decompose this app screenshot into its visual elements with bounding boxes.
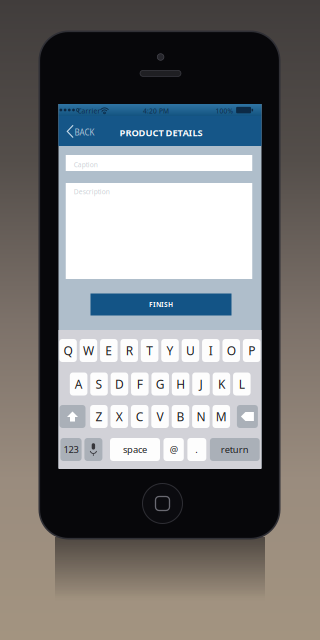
button[interactable]: BACK [63,116,99,146]
button[interactable]: J [192,372,210,395]
staticText: N [196,408,205,424]
staticText: L [239,376,245,392]
button[interactable]: . [187,438,206,461]
staticText: M [216,408,227,424]
button[interactable]: Shift [59,405,85,428]
button[interactable]: K [213,372,230,395]
button[interactable]: A [70,372,87,395]
button[interactable]: return [210,438,260,461]
staticText: Z [95,408,102,424]
button[interactable]: Q [59,339,77,362]
staticText: R [126,342,133,358]
button[interactable]: R [120,339,138,362]
button[interactable]: 123 [60,438,82,461]
staticText: 100% [215,106,233,115]
button[interactable]: V [151,405,169,428]
staticText: B [176,408,184,424]
staticText: @ [170,443,178,456]
staticText: PRODUCT DETAILS [119,126,202,139]
staticText: A [75,376,83,392]
staticText: Y [166,342,173,358]
staticText: space [123,443,147,456]
staticText: S [95,376,102,392]
staticText: 123 [63,443,78,456]
staticText: . [195,443,198,456]
staticText: I [209,342,213,358]
staticText: E [105,342,112,358]
button[interactable]: Y [161,339,179,362]
button[interactable]: O [222,339,240,362]
button[interactable]: M [212,405,230,428]
button[interactable]: space [110,438,160,461]
staticText: D [115,376,124,392]
staticText: Carrier [77,106,100,115]
staticText: X [116,408,123,424]
button[interactable]: U [182,339,199,362]
button[interactable]: N [192,405,210,428]
staticText: K [218,376,225,392]
button[interactable]: Caption [66,155,252,171]
staticText: Description [74,187,110,196]
staticText: H [176,376,185,392]
staticText: Q [63,342,72,358]
button[interactable]: Z [90,405,108,428]
button[interactable]: W [80,339,97,362]
staticText: U [186,342,195,358]
staticText: C [136,408,144,424]
button[interactable]: I [202,339,220,362]
staticText: W [83,342,94,358]
staticText: J [199,376,202,392]
button[interactable]: Delete [237,405,258,428]
button[interactable]: D [111,372,128,395]
staticText: O [227,342,236,358]
staticText: return [221,443,249,456]
staticText: G [156,376,165,392]
staticText: FINISH [149,300,173,309]
button[interactable]: X [110,405,128,428]
button[interactable]: L [233,372,251,395]
button[interactable]: E [100,339,118,362]
staticText: P [248,342,255,358]
button[interactable]: H [172,372,189,395]
button[interactable]: S [90,372,108,395]
button[interactable]: T [141,339,158,362]
staticText: V [157,408,164,424]
button[interactable]: @ [163,438,184,461]
staticText: F [137,376,143,392]
button[interactable]: Dictation [84,438,102,461]
button[interactable]: P [243,339,260,362]
staticText: Caption [74,160,98,169]
button[interactable]: G [151,372,169,395]
button[interactable]: B [172,405,189,428]
button[interactable]: C [131,405,148,428]
button[interactable]: FINISH [90,293,231,315]
staticText: BACK [74,127,94,138]
staticText: T [146,342,153,358]
staticText: 4:20 PM [143,106,169,115]
button[interactable]: F [131,372,149,395]
